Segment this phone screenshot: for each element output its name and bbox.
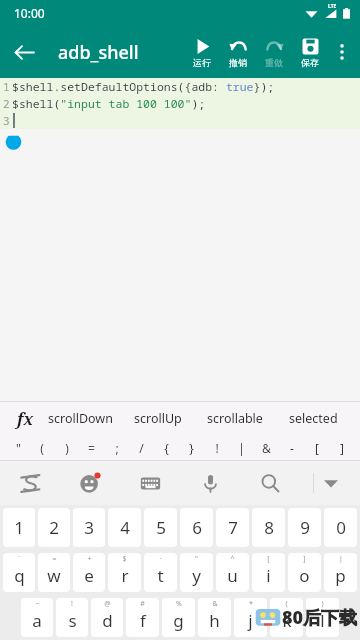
staticText: 3 — [3, 113, 10, 128]
staticText: ; — [115, 440, 119, 456]
staticText: 5 — [156, 516, 166, 539]
button[interactable]: ; — [104, 435, 129, 460]
staticText: " — [16, 440, 21, 456]
button[interactable]: = — [79, 435, 104, 460]
button[interactable]: scrollable — [196, 402, 274, 435]
button[interactable]: % — [162, 598, 195, 637]
button[interactable]: 1 — [3, 508, 35, 547]
button[interactable]: Voice input — [194, 467, 226, 499]
staticText: k — [282, 609, 292, 632]
staticText: i — [266, 564, 271, 587]
button[interactable]: ) — [306, 598, 339, 637]
button[interactable]: { — [154, 435, 179, 460]
staticText: 重做 — [265, 57, 283, 68]
button[interactable]: ! — [56, 598, 88, 637]
button[interactable]: 5 — [144, 508, 177, 547]
button[interactable]: 保存 — [292, 26, 328, 78]
button[interactable]: 0 — [324, 508, 357, 547]
button[interactable]: " — [180, 553, 213, 592]
button[interactable]: Emoji — [75, 468, 105, 498]
staticText: 8 — [264, 516, 274, 539]
staticText: 80后下载 — [282, 605, 358, 630]
staticText: a — [32, 609, 42, 632]
staticText: 运行 — [193, 57, 211, 68]
staticText: @ — [104, 599, 111, 609]
staticText: ) — [65, 440, 69, 456]
staticText: 撤销 — [229, 57, 247, 68]
staticText: & — [262, 440, 271, 456]
button[interactable]: Hide keyboard — [314, 466, 348, 500]
button[interactable]: / — [129, 435, 154, 460]
button[interactable]: Functions — [8, 402, 42, 435]
button[interactable]: ] — [329, 435, 354, 460]
button[interactable]: 4 — [108, 508, 141, 547]
button[interactable]: scrollUp — [119, 402, 196, 435]
button[interactable]: # — [126, 598, 159, 637]
staticText: 1 — [3, 79, 10, 94]
button[interactable]: 运行 — [184, 26, 220, 78]
staticText: % — [176, 599, 182, 609]
button[interactable]: More options — [328, 26, 356, 78]
button[interactable]: 3 — [73, 508, 105, 547]
staticText: scrollable — [207, 410, 263, 427]
staticText: ! — [71, 599, 73, 609]
button[interactable]: + — [73, 553, 105, 592]
staticText: 0 — [336, 516, 346, 539]
button[interactable]: " — [6, 435, 30, 460]
button[interactable]: | — [324, 553, 357, 592]
staticText: 3 — [84, 516, 94, 539]
button[interactable]: @ — [91, 598, 123, 637]
staticText: LTE — [328, 3, 337, 10]
button[interactable]: Back — [0, 28, 48, 76]
staticText: ( — [40, 440, 44, 456]
button[interactable]: $ — [108, 553, 141, 592]
button[interactable]: scrollDown — [42, 402, 119, 435]
button[interactable]: [ — [304, 435, 329, 460]
button[interactable]: 2 — [38, 508, 70, 547]
staticText: [ — [267, 554, 270, 564]
button[interactable]: 8 — [252, 508, 285, 547]
staticText: & — [212, 599, 218, 609]
button[interactable]: | — [229, 435, 254, 460]
staticText: d — [102, 609, 113, 632]
button[interactable]: Keyboard layout — [134, 467, 166, 499]
button[interactable]: 6 — [180, 508, 213, 547]
staticText: 2 — [49, 516, 59, 539]
staticText: selected — [289, 410, 338, 427]
button[interactable]: ) — [54, 435, 79, 460]
staticText: scrollUp — [134, 410, 182, 427]
staticText: | — [238, 440, 245, 456]
staticText: 2 — [3, 96, 10, 111]
staticText: + — [87, 554, 92, 564]
button[interactable]: Sogou input method — [14, 467, 46, 499]
staticText: 保存 — [301, 57, 319, 68]
staticText: 4 — [120, 516, 130, 539]
button[interactable]: } — [179, 435, 204, 460]
button[interactable]: 9 — [288, 508, 321, 547]
button[interactable]: 撤销 — [220, 26, 256, 78]
button[interactable]: ] — [288, 553, 321, 592]
staticText: ) — [321, 599, 324, 609]
button[interactable]: = — [38, 553, 70, 592]
staticText: l — [320, 609, 325, 632]
button[interactable]: ` — [3, 553, 35, 592]
button[interactable]: ~ — [21, 598, 53, 637]
button[interactable]: ( — [30, 435, 54, 460]
button[interactable]: 7 — [216, 508, 249, 547]
button[interactable]: - — [279, 435, 304, 460]
button[interactable]: ! — [204, 435, 229, 460]
button[interactable]: · — [144, 553, 177, 592]
button[interactable]: * — [234, 598, 267, 637]
button[interactable]: selected — [274, 402, 352, 435]
button[interactable]: Search — [254, 467, 286, 499]
button[interactable]: & — [254, 435, 279, 460]
button[interactable]: ^ — [216, 553, 249, 592]
button[interactable]: ( — [270, 598, 303, 637]
button[interactable]: 重做 — [256, 26, 292, 78]
staticText: q — [14, 564, 25, 587]
button[interactable]: & — [198, 598, 231, 637]
staticText: $shell.setDefaultOptions({adb: true}); — [12, 79, 275, 95]
staticText: " — [195, 554, 198, 564]
button[interactable]: [ — [252, 553, 285, 592]
staticText: ] — [303, 554, 306, 564]
